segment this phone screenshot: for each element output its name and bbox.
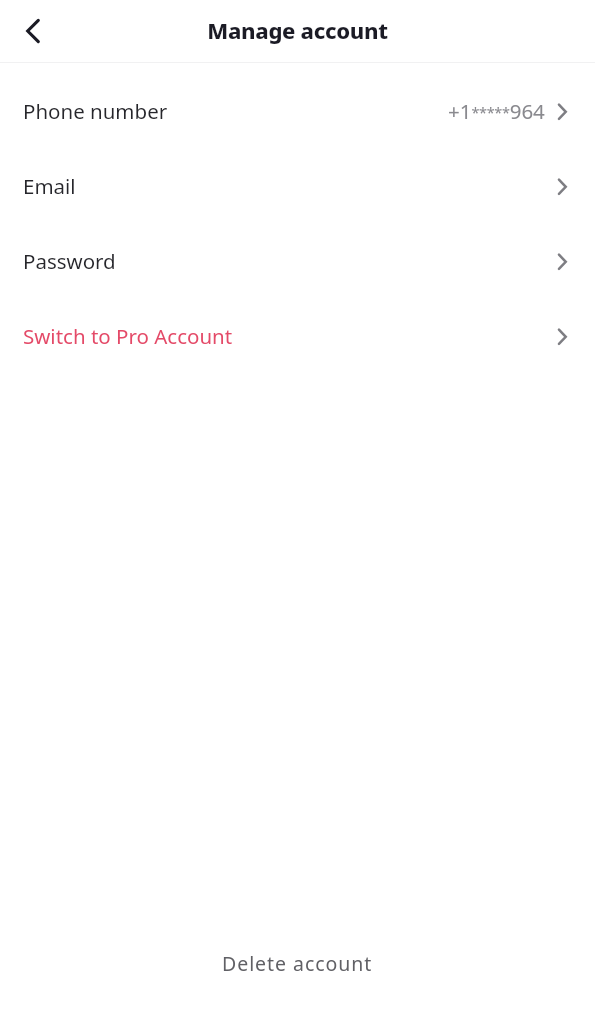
staticText: Email bbox=[23, 172, 76, 200]
staticText: Delete account bbox=[222, 950, 373, 977]
staticText: Phone number bbox=[23, 97, 168, 125]
staticText: Manage account bbox=[207, 15, 388, 45]
button[interactable]: Switch to Pro Account bbox=[0, 298, 595, 373]
staticText: +1*****964 bbox=[448, 97, 545, 125]
button[interactable]: Phone number bbox=[0, 73, 595, 148]
button[interactable]: Delete account bbox=[204, 940, 391, 987]
staticText: Password bbox=[23, 247, 116, 275]
button[interactable]: Password bbox=[0, 223, 595, 298]
button[interactable]: Email bbox=[0, 148, 595, 223]
staticText: Switch to Pro Account bbox=[23, 322, 233, 350]
button[interactable]: Back bbox=[9, 7, 57, 55]
